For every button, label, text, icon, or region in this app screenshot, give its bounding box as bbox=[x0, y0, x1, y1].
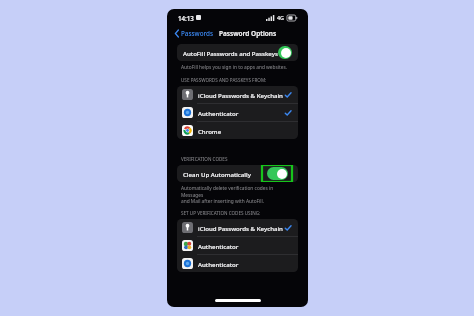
button[interactable]: Authenticator bbox=[177, 255, 298, 272]
button[interactable]: iCloud Passwords & Keychain bbox=[177, 219, 298, 236]
staticText: Password Options bbox=[219, 29, 277, 38]
staticText: Automatically delete verification codes … bbox=[181, 185, 296, 204]
button[interactable]: Toggle bbox=[278, 46, 292, 59]
button[interactable]: Toggle bbox=[267, 167, 288, 180]
staticText: 4G bbox=[277, 14, 285, 21]
staticText: AutoFill helps you sign in to apps and w… bbox=[181, 64, 288, 71]
staticText: VERIFICATION CODES bbox=[181, 156, 228, 162]
staticText: AutoFill Passwords and Passkeys bbox=[183, 49, 278, 57]
staticText: Passwords bbox=[181, 29, 213, 38]
button[interactable]: Chrome bbox=[177, 122, 298, 139]
staticText: iCloud Passwords & Keychain bbox=[198, 224, 283, 232]
button[interactable]: AutoFill Passwords and Passkeys bbox=[177, 44, 298, 61]
staticText: USE PASSWORDS AND PASSKEYS FROM: bbox=[181, 77, 267, 83]
staticText: 14:13 bbox=[178, 14, 194, 22]
staticText: iCloud Passwords & Keychain bbox=[198, 91, 283, 99]
button[interactable]: Passwords bbox=[174, 29, 214, 38]
button[interactable]: Authenticator bbox=[177, 104, 298, 121]
staticText: Authenticator bbox=[198, 109, 239, 117]
staticText: SET UP VERIFICATION CODES USING: bbox=[181, 210, 261, 216]
button[interactable]: Authenticator bbox=[177, 237, 298, 254]
button[interactable]: Clean Up Automatically bbox=[177, 165, 298, 182]
staticText: Authenticator bbox=[198, 242, 239, 250]
staticText: Chrome bbox=[198, 127, 222, 135]
button[interactable]: iCloud Passwords & Keychain bbox=[177, 86, 298, 103]
staticText: Clean Up Automatically bbox=[183, 170, 251, 178]
staticText: Authenticator bbox=[198, 260, 239, 268]
